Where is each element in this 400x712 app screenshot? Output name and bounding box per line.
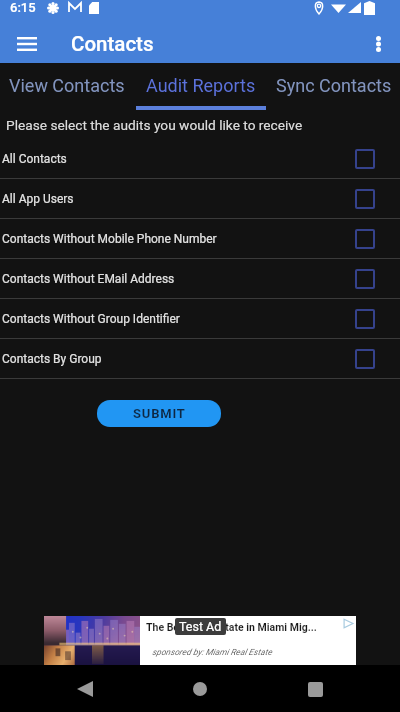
staticText: The Best Real Estate in Miami Mig... (146, 621, 317, 633)
staticText: sponsored by: Miami Real Estate (152, 647, 272, 657)
button[interactable]: Contacts Without EMail Address (0, 259, 400, 299)
button[interactable]: More options (361, 27, 395, 61)
button[interactable]: Contacts Without Group Identifier (0, 299, 400, 339)
button[interactable]: Home (180, 669, 220, 709)
button[interactable]: The Best Real Estate in Miami Mig... (44, 616, 356, 665)
staticText: Please select the audits you would like … (6, 117, 303, 133)
button[interactable]: Sync Contacts (267, 63, 400, 111)
button[interactable]: Contacts Without Mobile Phone Number (0, 219, 400, 259)
staticText: Contacts Without Group Identifier (2, 312, 355, 326)
button[interactable]: Contacts By Group (0, 339, 400, 379)
button[interactable]: Recent apps (295, 669, 335, 709)
staticText: Contacts (71, 32, 154, 56)
button[interactable]: Audit Reports (134, 63, 267, 111)
staticText: Contacts Without EMail Address (2, 272, 355, 286)
button[interactable]: Back (65, 669, 105, 709)
staticText: 6:15 (10, 0, 36, 15)
staticText: Contacts Without Mobile Phone Number (2, 232, 355, 246)
button[interactable]: SUBMIT (97, 400, 221, 427)
button[interactable]: View Contacts (0, 63, 134, 111)
staticText: Sync Contacts (276, 75, 392, 96)
staticText: View Contacts (9, 75, 125, 96)
staticText: Contacts By Group (2, 352, 355, 366)
staticText: SUBMIT (133, 406, 186, 421)
staticText: All App Users (2, 192, 355, 206)
staticText: All Contacts (2, 152, 355, 166)
staticText: Audit Reports (146, 75, 256, 96)
button[interactable]: All Contacts (0, 139, 400, 179)
button[interactable]: Open navigation drawer (9, 26, 45, 62)
button[interactable]: All App Users (0, 179, 400, 219)
staticText: Test Ad (179, 619, 222, 634)
